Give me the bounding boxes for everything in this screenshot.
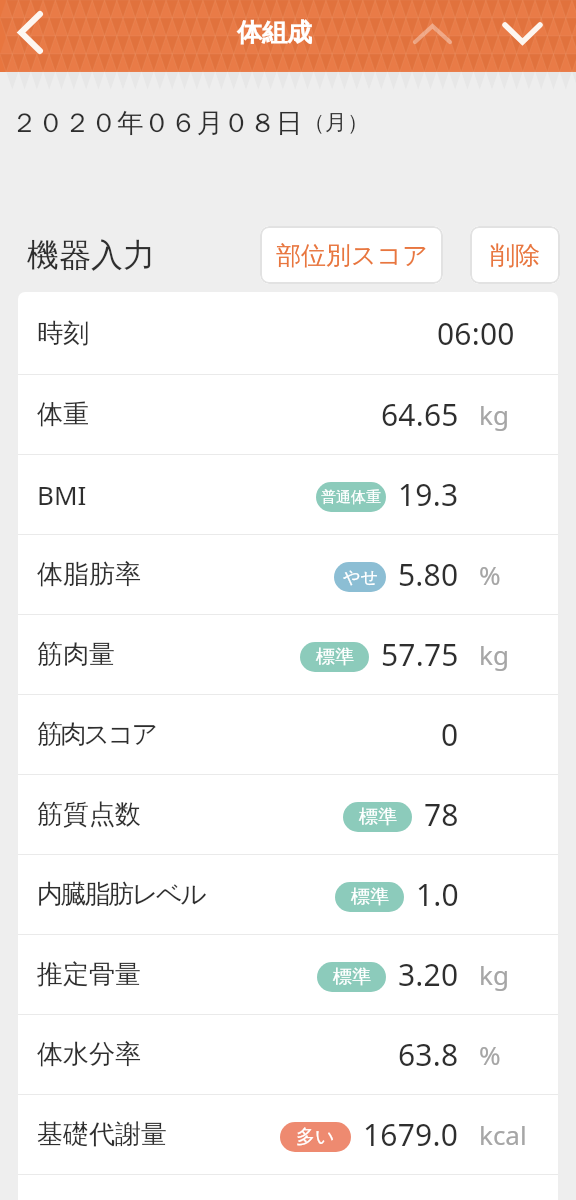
button[interactable]: 部位別スコア bbox=[260, 226, 443, 284]
staticText: 推定骨量 bbox=[37, 958, 141, 991]
button[interactable]: 体水分率 bbox=[18, 1014, 558, 1094]
staticText: 部位別スコア bbox=[276, 240, 428, 271]
staticText: 19.3 bbox=[398, 474, 459, 515]
staticText: 体脂肪率 bbox=[37, 558, 141, 591]
button[interactable]: 基礎代謝量 bbox=[18, 1094, 558, 1174]
staticText: 1.0 bbox=[416, 874, 459, 915]
staticText: 63.8 bbox=[398, 1034, 459, 1075]
staticText: % bbox=[479, 557, 501, 592]
staticText: kg bbox=[479, 957, 509, 992]
staticText: 標準 bbox=[351, 885, 389, 909]
staticText: 0 bbox=[441, 714, 459, 755]
staticText: BMI bbox=[37, 477, 87, 512]
staticText: 57.75 bbox=[381, 634, 459, 675]
staticText: 筋肉量 bbox=[37, 638, 115, 671]
staticText: 内臓脂肪レベル bbox=[37, 878, 205, 911]
staticText: 基礎代謝量 bbox=[37, 1118, 167, 1151]
staticText: % bbox=[479, 1037, 501, 1072]
button[interactable]: Next day bbox=[486, 0, 558, 72]
staticText: （月） bbox=[303, 109, 369, 137]
staticText: 多い bbox=[296, 1125, 335, 1149]
staticText: 06:00 bbox=[437, 313, 515, 354]
staticText: ２０２０年０６月０８日 bbox=[11, 106, 303, 139]
staticText: 体組成 bbox=[237, 17, 312, 48]
button[interactable]: Back bbox=[0, 0, 58, 72]
button[interactable]: Previous day bbox=[396, 0, 468, 72]
button[interactable]: 体重 bbox=[18, 374, 558, 454]
staticText: やせ bbox=[343, 567, 378, 588]
button[interactable]: 筋肉スコア bbox=[18, 694, 558, 774]
staticText: 5.80 bbox=[398, 554, 459, 595]
staticText: 体重 bbox=[37, 398, 89, 431]
staticText: 削除 bbox=[490, 240, 540, 271]
button[interactable]: 筋質点数 bbox=[18, 774, 558, 854]
staticText: 標準 bbox=[333, 965, 371, 989]
staticText: kg bbox=[479, 637, 509, 672]
button[interactable]: 体内年齢 bbox=[18, 1174, 558, 1200]
button[interactable]: 体脂肪率 bbox=[18, 534, 558, 614]
staticText: 3.20 bbox=[398, 954, 459, 995]
staticText: 標準 bbox=[359, 805, 397, 829]
button[interactable]: 筋肉量 bbox=[18, 614, 558, 694]
staticText: 1679.0 bbox=[363, 1114, 459, 1155]
staticText: 筋質点数 bbox=[37, 798, 141, 831]
staticText: 78 bbox=[424, 794, 459, 835]
button[interactable]: 削除 bbox=[470, 226, 560, 284]
staticText: 64.65 bbox=[381, 394, 459, 435]
button[interactable]: 内臓脂肪レベル bbox=[18, 854, 558, 934]
staticText: kcal bbox=[479, 1117, 527, 1152]
staticText: 体水分率 bbox=[37, 1038, 141, 1071]
button[interactable]: 推定骨量 bbox=[18, 934, 558, 1014]
button[interactable]: 時刻 bbox=[18, 292, 558, 374]
staticText: 普通体重 bbox=[321, 488, 381, 507]
staticText: 筋肉スコア bbox=[37, 718, 156, 751]
button[interactable]: BMI bbox=[18, 454, 558, 534]
staticText: 時刻 bbox=[37, 317, 89, 350]
staticText: 機器入力 bbox=[27, 235, 155, 275]
staticText: kg bbox=[479, 397, 509, 432]
staticText: 標準 bbox=[316, 645, 354, 669]
